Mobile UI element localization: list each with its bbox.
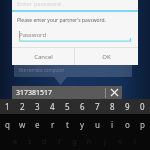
staticText: k <box>118 137 122 147</box>
button[interactable]: 2 <box>15 99 30 114</box>
staticText: 5 <box>65 101 70 112</box>
staticText: h <box>87 137 92 147</box>
button[interactable]: 0 <box>135 99 150 114</box>
button[interactable]: 4 <box>45 99 60 114</box>
staticText: i <box>111 119 114 130</box>
button[interactable]: t <box>60 117 75 132</box>
button[interactable]: 6 <box>75 99 90 114</box>
button[interactable]: e <box>30 117 45 132</box>
staticText: o <box>125 119 130 130</box>
staticText: e <box>35 119 40 130</box>
staticText: q <box>5 119 10 130</box>
button[interactable]: o <box>120 117 135 132</box>
button[interactable]: 317381517 <box>12 86 122 99</box>
staticText: Enter password <box>17 0 61 8</box>
staticText: Cancel <box>34 53 53 61</box>
staticText: 7 <box>95 101 100 112</box>
staticText: the remote computer <box>19 67 65 73</box>
staticText: 2 <box>20 101 25 112</box>
button[interactable]: u <box>90 117 105 132</box>
button[interactable]: r <box>45 117 60 132</box>
staticText: Password <box>19 31 47 39</box>
button[interactable]: y <box>75 117 90 132</box>
button[interactable]: 9 <box>120 99 135 114</box>
staticText: 317381517 <box>16 88 53 98</box>
staticText: g <box>72 137 77 147</box>
staticText: y <box>80 119 85 130</box>
staticText: p <box>140 119 145 130</box>
staticText: 0 <box>140 101 145 112</box>
button[interactable]: d <box>37 136 52 148</box>
staticText: 9 <box>125 101 130 112</box>
button[interactable]: Cancel <box>12 48 74 65</box>
staticText: 8 <box>110 101 115 112</box>
button[interactable]: Clear text <box>106 86 122 99</box>
staticText: 4 <box>50 101 55 112</box>
button[interactable]: i <box>105 117 120 132</box>
button[interactable]: 5 <box>60 99 75 114</box>
staticText: l <box>134 137 136 147</box>
staticText: t <box>66 119 69 130</box>
staticText: w <box>19 119 26 130</box>
button[interactable]: p <box>135 117 150 132</box>
staticText: OK <box>102 53 111 61</box>
button[interactable]: g <box>67 136 82 148</box>
staticText: a <box>13 137 17 147</box>
button[interactable]: q <box>0 117 15 132</box>
button[interactable]: OK <box>75 48 138 65</box>
staticText: 6 <box>80 101 85 112</box>
staticText: j <box>104 137 106 147</box>
staticText: d <box>42 137 47 147</box>
staticText: 1 <box>5 101 10 112</box>
staticText: Please enter your partner's password. <box>17 17 106 24</box>
button[interactable]: 3 <box>30 99 45 114</box>
staticText: f <box>58 137 61 147</box>
staticText: 3 <box>35 101 40 112</box>
button[interactable]: 8 <box>105 99 120 114</box>
staticText: u <box>95 119 100 130</box>
button[interactable]: Password <box>19 31 131 42</box>
staticText: s <box>28 137 32 147</box>
button[interactable]: 1 <box>0 99 15 114</box>
button[interactable]: 7 <box>90 99 105 114</box>
staticText: r <box>51 119 55 130</box>
button[interactable]: w <box>15 117 30 132</box>
